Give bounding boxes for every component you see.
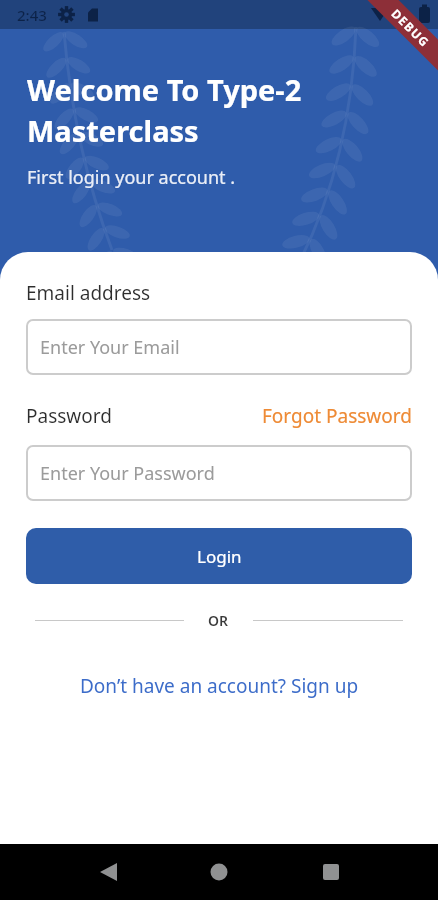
- staticText: DEBUG: [388, 5, 434, 51]
- button[interactable]: Don’t have an account? Sign up: [26, 673, 412, 699]
- button[interactable]: [84, 848, 132, 896]
- staticText: Password: [26, 403, 112, 429]
- staticText: Login: [197, 545, 242, 568]
- staticText: Welcome To Type-2: [27, 70, 302, 109]
- staticText: Enter Your Password: [40, 461, 215, 486]
- button[interactable]: [195, 848, 243, 896]
- staticText: First login your account .: [27, 165, 236, 190]
- button[interactable]: [307, 848, 355, 896]
- staticText: Forgot Password: [262, 403, 412, 429]
- staticText: Masterclass: [27, 111, 199, 150]
- staticText: Email address: [26, 280, 151, 306]
- button[interactable]: Forgot Password: [262, 403, 412, 429]
- button[interactable]: Login: [26, 528, 412, 584]
- staticText: Don’t have an account? Sign up: [80, 673, 359, 699]
- button[interactable]: Enter Your Password: [26, 445, 412, 501]
- button[interactable]: Enter Your Email: [26, 319, 412, 375]
- staticText: OR: [208, 611, 229, 630]
- staticText: Enter Your Email: [40, 335, 180, 360]
- staticText: 2:43: [17, 5, 47, 25]
